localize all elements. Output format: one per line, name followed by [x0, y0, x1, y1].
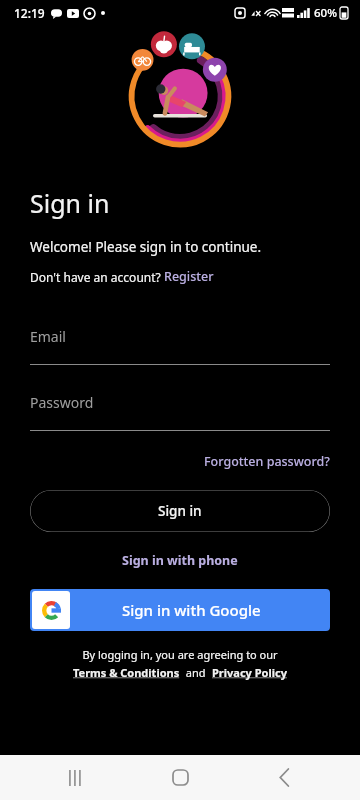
staticText: Terms & Conditions	[73, 665, 183, 680]
staticText: 60%	[314, 5, 337, 21]
staticText: Sign in with Google	[122, 600, 261, 620]
button[interactable]: Register	[164, 268, 214, 285]
button[interactable]: Sign in with Google	[30, 589, 330, 631]
staticText: Forgotten password?	[204, 453, 330, 470]
staticText: Sign in	[30, 186, 110, 220]
staticText: Welcome! Please sign in to continue.	[30, 238, 262, 256]
button[interactable]: Sign in	[30, 490, 330, 532]
button[interactable]: Home	[152, 755, 208, 800]
staticText: Don't have an account?	[30, 269, 164, 285]
button[interactable]: Terms & Conditions	[73, 665, 183, 680]
staticText: Privacy Policy	[212, 665, 287, 680]
button[interactable]: Forgotten password?	[204, 451, 330, 472]
staticText: Register	[164, 268, 214, 285]
button[interactable]: Password	[30, 393, 330, 431]
button[interactable]: Recent apps	[48, 755, 104, 800]
button[interactable]: Email	[30, 327, 330, 365]
staticText: and	[183, 665, 212, 680]
button[interactable]: Sign in with phone	[122, 550, 238, 571]
staticText: 12:19	[14, 5, 45, 21]
staticText: Sign in with phone	[122, 552, 238, 569]
staticText: Sign in	[158, 502, 202, 520]
staticText: Email	[30, 327, 66, 346]
staticText: By logging in, you are agreeing to our	[82, 647, 278, 662]
staticText: Password	[30, 393, 94, 412]
button[interactable]: Back	[256, 755, 312, 800]
button[interactable]: Privacy Policy	[212, 665, 287, 680]
